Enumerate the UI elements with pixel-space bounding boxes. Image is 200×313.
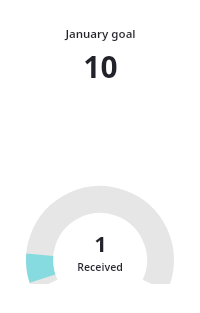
button[interactable]: 1 (0, 228, 200, 274)
staticText: 1 (94, 228, 107, 258)
button[interactable]: Received 1 of 10 (0, 0, 200, 313)
staticText: January goal (65, 26, 136, 42)
button[interactable]: January goal (0, 26, 200, 87)
staticText: 10 (83, 46, 118, 87)
staticText: Received (77, 260, 123, 274)
